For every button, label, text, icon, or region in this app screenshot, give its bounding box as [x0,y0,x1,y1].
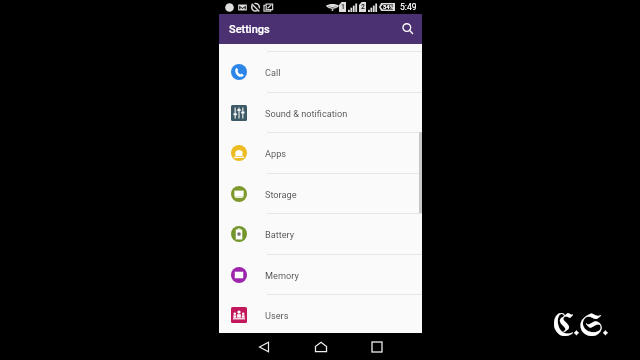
button[interactable]: Battery [219,214,422,254]
staticText: 34% [383,4,394,11]
button[interactable]: Call [219,52,422,92]
staticText: 5:49 [400,2,417,12]
staticText: Users [265,310,289,321]
button[interactable]: Users [219,295,422,335]
staticText: 1 [341,3,345,11]
staticText: 2 [361,3,365,11]
staticText: Call [265,67,281,78]
staticText: Memory [265,270,299,281]
button[interactable]: Memory [219,255,422,295]
staticText: Sound & notification [265,108,348,119]
staticText: Storage [265,189,297,200]
staticText: C.S. [553,311,609,342]
staticText: Apps [265,148,287,159]
staticText: Settings [229,23,270,36]
button[interactable]: Search [398,19,418,39]
button[interactable]: Recent apps [366,336,388,358]
button[interactable]: Home [310,336,332,358]
staticText: Battery [265,229,295,240]
button[interactable]: Back [253,336,275,358]
button[interactable]: Apps [219,133,422,173]
button[interactable]: Storage [219,174,422,214]
button[interactable]: Sound & notification [219,93,422,133]
